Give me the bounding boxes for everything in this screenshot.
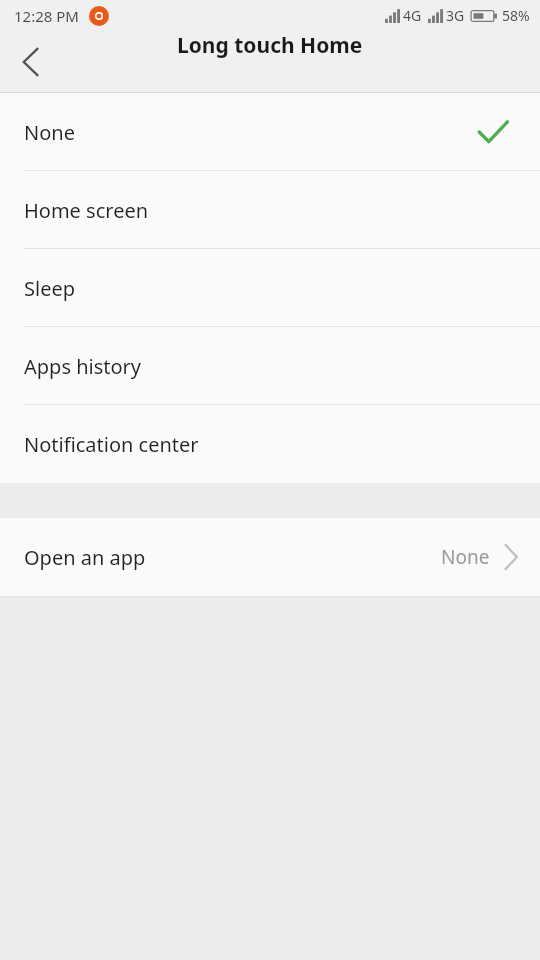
staticText: Open an app <box>24 544 146 571</box>
button[interactable]: Open an app <box>0 518 540 596</box>
button[interactable]: Apps history <box>0 327 540 405</box>
staticText: 3G <box>446 6 465 25</box>
staticText: Apps history <box>24 353 142 380</box>
staticText: 4G <box>403 6 422 25</box>
button[interactable]: Home screen <box>0 171 540 249</box>
staticText: Long touch Home <box>177 31 363 60</box>
button[interactable]: None <box>0 93 540 171</box>
button[interactable]: Notification center <box>0 405 540 483</box>
staticText: None <box>441 544 490 570</box>
staticText: Sleep <box>24 275 75 302</box>
staticText: Notification center <box>24 431 199 458</box>
staticText: Home screen <box>24 197 149 224</box>
button[interactable]: Sleep <box>0 249 540 327</box>
staticText: None <box>24 119 75 146</box>
staticText: 12:28 PM <box>14 6 79 26</box>
button[interactable]: Back <box>0 31 62 93</box>
staticText: 58% <box>502 6 530 25</box>
